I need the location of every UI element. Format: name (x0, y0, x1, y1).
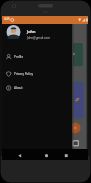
button[interactable]: About (2, 82, 72, 94)
button[interactable] (73, 82, 83, 117)
staticText: 3:45 (4, 17, 10, 21)
button[interactable] (13, 150, 26, 160)
staticText: John@gmail.com (27, 36, 50, 40)
button[interactable]: Privacy Policy (2, 68, 72, 80)
button[interactable] (60, 150, 73, 160)
staticText: About (14, 86, 23, 90)
button[interactable]: Profile (2, 51, 72, 63)
button[interactable] (70, 123, 80, 133)
staticText: Privacy Policy (14, 72, 33, 76)
staticText: Profile (14, 55, 24, 59)
button[interactable]: John (2, 24, 72, 46)
staticText: John (27, 29, 36, 34)
button[interactable] (40, 150, 53, 160)
button[interactable] (73, 43, 83, 66)
